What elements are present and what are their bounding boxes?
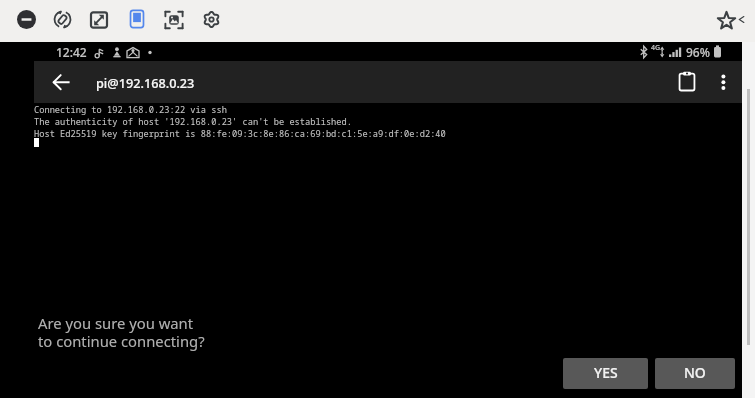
button[interactable]: Resize xyxy=(89,10,109,30)
button[interactable]: Rotate xyxy=(53,10,72,29)
staticText: The authenticity of host '192.168.0.23' … xyxy=(34,116,352,128)
staticText: 96% xyxy=(686,44,710,60)
button[interactable]: Paste xyxy=(675,70,699,94)
staticText: 4G xyxy=(651,43,661,53)
button[interactable]: NO xyxy=(655,358,735,389)
button[interactable]: Screenshot xyxy=(164,10,184,30)
staticText: pi@192.168.0.23 xyxy=(96,74,195,91)
staticText: NO xyxy=(684,363,706,382)
button[interactable]: Power off xyxy=(17,10,36,29)
button[interactable]: Settings xyxy=(202,10,221,29)
button[interactable]: Device xyxy=(128,10,146,28)
button[interactable]: Collapse xyxy=(737,15,746,24)
staticText: 12:42 xyxy=(56,44,87,60)
button[interactable]: YES xyxy=(563,358,648,389)
staticText: Are you sure you want to continue connec… xyxy=(38,313,205,351)
staticText: Connecting to 192.168.0.23:22 via ssh xyxy=(34,104,227,116)
button[interactable]: More options xyxy=(711,70,735,94)
staticText: Host Ed25519 key fingerprint is 88:fe:09… xyxy=(34,128,446,140)
button[interactable]: Back xyxy=(48,70,72,94)
button[interactable]: Favorite xyxy=(717,11,736,30)
staticText: YES xyxy=(594,363,618,382)
